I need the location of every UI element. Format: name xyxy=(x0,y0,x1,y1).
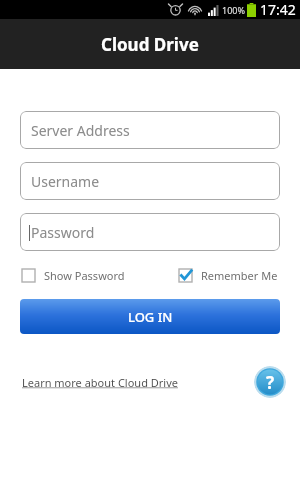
staticText: Learn more about Cloud Drive xyxy=(22,375,178,390)
button[interactable]: LOG IN xyxy=(20,299,280,334)
staticText: Remember Me xyxy=(201,268,278,283)
staticText: Username xyxy=(31,172,100,191)
button[interactable]: Server Address xyxy=(20,111,280,149)
staticText: Show Password xyxy=(44,268,125,283)
button[interactable]: Remember Me xyxy=(179,268,278,283)
button[interactable]: Username xyxy=(20,162,280,200)
staticText: Cloud Drive xyxy=(101,33,199,56)
staticText: Password xyxy=(31,223,95,242)
staticText: LOG IN xyxy=(128,308,173,326)
button[interactable]: Learn more about Cloud Drive xyxy=(22,375,178,390)
staticText: 100% xyxy=(222,4,245,16)
button[interactable]: Password xyxy=(20,213,280,251)
button[interactable]: Help xyxy=(254,366,286,398)
staticText: Server Address xyxy=(31,121,130,140)
button[interactable]: Show Password xyxy=(22,268,125,283)
staticText: 17:42 xyxy=(260,0,296,19)
staticText: ? xyxy=(266,371,275,394)
